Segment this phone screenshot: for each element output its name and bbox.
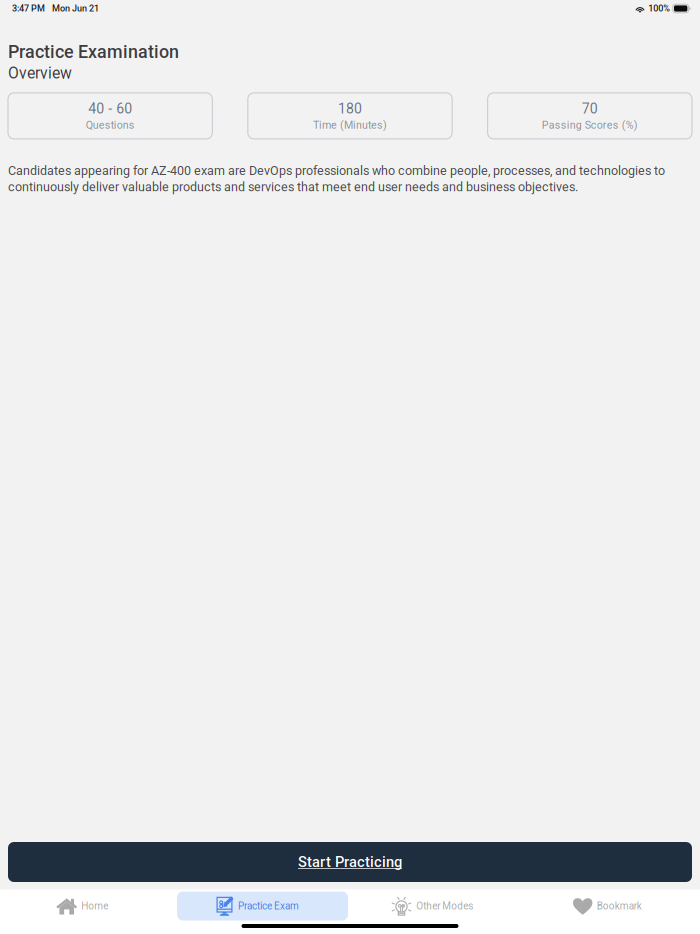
staticText: Bookmark (597, 900, 642, 912)
staticText: 100% (648, 3, 670, 14)
staticText: Home (81, 900, 108, 912)
staticText: Mon Jun 21 (52, 3, 99, 14)
staticText: Candidates appearing for AZ-400 exam are… (8, 163, 665, 194)
staticText: 180 (338, 100, 362, 117)
staticText: 70 (582, 100, 598, 117)
button[interactable]: Home (0, 891, 170, 920)
staticText: Time (Minutes) (313, 119, 387, 131)
staticText: Practice Examination (8, 41, 179, 62)
button[interactable]: Other Modes (345, 891, 520, 920)
staticText: Overview (8, 64, 72, 82)
staticText: 40 - 60 (88, 100, 132, 117)
staticText: Questions (86, 119, 135, 131)
staticText: Start Practicing (298, 853, 402, 871)
button[interactable]: Bookmark (520, 891, 695, 920)
button[interactable]: Practice Exam (170, 891, 345, 920)
staticText: 3:47 PM (12, 3, 45, 14)
staticText: Other Modes (416, 900, 473, 912)
staticText: Passing Scores (%) (542, 119, 638, 131)
staticText: Practice Exam (238, 900, 299, 912)
button[interactable]: Start Practicing (8, 842, 692, 882)
